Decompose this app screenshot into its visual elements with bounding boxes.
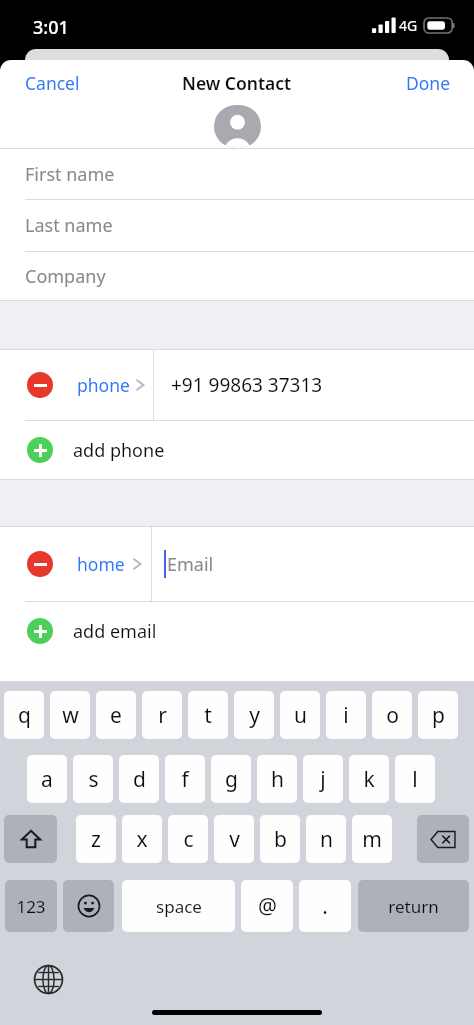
staticText: Last name	[25, 213, 113, 238]
staticText: n	[320, 825, 333, 854]
staticText: return	[388, 895, 439, 918]
staticText: phone	[77, 373, 130, 397]
staticText: add phone	[73, 438, 165, 463]
button[interactable]: Add field	[0, 421, 474, 479]
button[interactable]: space	[122, 880, 235, 932]
staticText: Cancel	[25, 71, 80, 95]
staticText: New Contact	[182, 71, 292, 95]
staticText: add email	[73, 619, 157, 644]
staticText: o	[386, 701, 399, 730]
button[interactable]: w	[50, 691, 90, 739]
other: Remove field	[27, 551, 53, 577]
button[interactable]: return	[358, 880, 469, 932]
button[interactable]: .	[299, 880, 351, 932]
button[interactable]: u	[280, 691, 320, 739]
button[interactable]: Cancel	[0, 65, 92, 101]
button[interactable]: q	[4, 691, 44, 739]
button[interactable]: Company	[0, 252, 474, 300]
button[interactable]: r	[142, 691, 182, 739]
button[interactable]: j	[303, 755, 343, 803]
staticText: space	[156, 895, 202, 918]
staticText: j	[320, 765, 326, 794]
other: Add field	[27, 437, 53, 463]
staticText: g	[225, 765, 238, 794]
button[interactable]: Done	[394, 65, 474, 101]
staticText: 4G	[399, 16, 418, 35]
staticText: x	[136, 825, 148, 854]
button[interactable]: Remove field	[0, 527, 474, 601]
staticText: First name	[25, 162, 115, 187]
button[interactable]: Switch keyboard	[26, 957, 70, 1001]
button[interactable]: Shift	[4, 815, 57, 863]
staticText: 123	[16, 895, 46, 918]
staticText: home	[77, 552, 125, 576]
button[interactable]: s	[73, 755, 113, 803]
staticText: w	[62, 701, 79, 730]
staticText: y	[249, 701, 260, 730]
staticText: l	[412, 765, 418, 794]
button[interactable]: z	[76, 815, 116, 863]
button[interactable]: o	[372, 691, 412, 739]
staticText: b	[274, 825, 287, 854]
button[interactable]: Add field	[0, 602, 474, 660]
staticText: r	[158, 701, 167, 730]
button[interactable]: e	[96, 691, 136, 739]
button[interactable]: h	[257, 755, 297, 803]
staticText: h	[271, 765, 284, 794]
other: Add field	[27, 618, 53, 644]
staticText: t	[204, 701, 212, 730]
button[interactable]: i	[326, 691, 366, 739]
staticText: .	[322, 892, 328, 921]
button[interactable]: Add photo	[214, 105, 261, 148]
staticText: p	[432, 701, 445, 730]
button[interactable]: Remove field	[0, 350, 474, 420]
staticText: f	[181, 765, 189, 794]
button[interactable]: Emoji	[63, 880, 114, 932]
button[interactable]: 123	[5, 880, 57, 932]
button[interactable]: f	[165, 755, 205, 803]
staticText: i	[343, 701, 349, 730]
staticText: u	[294, 701, 307, 730]
staticText: Email	[167, 552, 214, 577]
button[interactable]: m	[352, 815, 392, 863]
staticText: d	[133, 765, 146, 794]
button[interactable]: c	[168, 815, 208, 863]
staticText: Done	[406, 71, 451, 95]
staticText: k	[363, 765, 375, 794]
staticText: z	[91, 825, 101, 854]
staticText: 3:01	[33, 15, 69, 40]
button[interactable]: k	[349, 755, 389, 803]
staticText: e	[110, 701, 122, 730]
button[interactable]: First name	[0, 149, 474, 199]
staticText: Company	[25, 264, 106, 289]
button[interactable]: x	[122, 815, 162, 863]
staticText: @	[258, 892, 277, 921]
button[interactable]: d	[119, 755, 159, 803]
staticText: q	[18, 701, 31, 730]
button[interactable]: g	[211, 755, 251, 803]
button[interactable]: Last name	[0, 200, 474, 251]
staticText: c	[183, 825, 194, 854]
button[interactable]: b	[260, 815, 300, 863]
button[interactable]: n	[306, 815, 346, 863]
other: Remove field	[27, 372, 53, 398]
button[interactable]: v	[214, 815, 254, 863]
button[interactable]: l	[395, 755, 435, 803]
button[interactable]: t	[188, 691, 228, 739]
button[interactable]: p	[418, 691, 458, 739]
staticText: +91 99863 37313	[171, 372, 323, 398]
staticText: v	[229, 825, 240, 854]
button[interactable]: Backspace	[417, 815, 469, 863]
button[interactable]: y	[234, 691, 274, 739]
staticText: m	[362, 825, 382, 854]
staticText: s	[88, 765, 99, 794]
button[interactable]: a	[27, 755, 67, 803]
staticText: a	[41, 765, 53, 794]
button[interactable]: @	[241, 880, 293, 932]
